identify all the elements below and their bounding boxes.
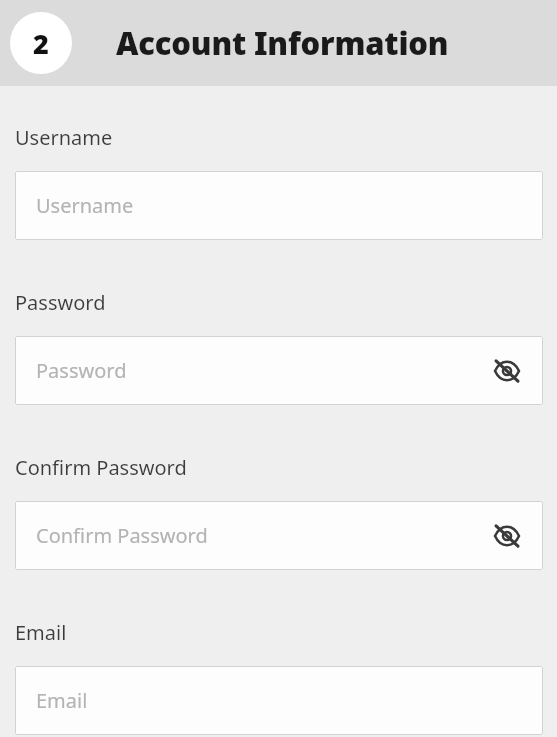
staticText: Email	[15, 619, 67, 646]
button[interactable]: Email	[15, 666, 543, 735]
button[interactable]: Toggle password visibility	[485, 349, 529, 393]
staticText: Confirm Password	[36, 522, 208, 549]
staticText: Account Information	[116, 22, 449, 64]
staticText: Email	[36, 687, 88, 714]
button[interactable]: Password	[15, 336, 543, 405]
staticText: Username	[36, 192, 134, 219]
staticText: 2	[33, 25, 49, 62]
staticText: Password	[36, 357, 127, 384]
staticText: Username	[15, 124, 113, 151]
button[interactable]: Username	[15, 171, 543, 240]
staticText: Confirm Password	[15, 454, 187, 481]
button[interactable]: Toggle password visibility	[485, 514, 529, 558]
button[interactable]: Confirm Password	[15, 501, 543, 570]
staticText: Password	[15, 289, 106, 316]
